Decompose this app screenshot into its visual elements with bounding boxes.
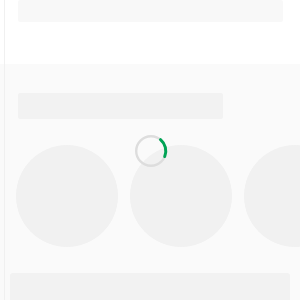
button[interactable]: [244, 145, 300, 247]
other: Loading: [135, 135, 167, 167]
button[interactable]: [130, 145, 232, 247]
button[interactable]: [16, 145, 118, 247]
